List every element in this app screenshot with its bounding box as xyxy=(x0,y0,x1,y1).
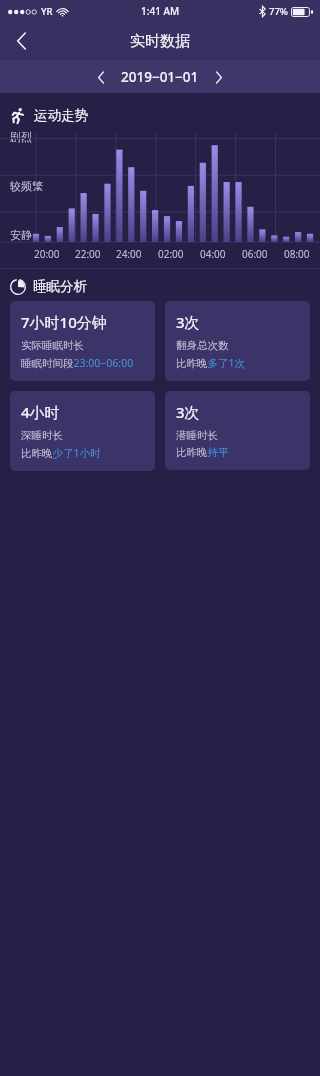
staticText: 睡眠分析 xyxy=(33,278,87,295)
staticText: 实时数据 xyxy=(130,32,190,51)
staticText: 24:00 xyxy=(116,247,142,261)
button[interactable]: Back xyxy=(0,22,42,60)
staticText: 4小时 xyxy=(21,402,60,422)
staticText: 安静 xyxy=(10,228,32,242)
staticText: 20:00 xyxy=(34,247,60,261)
staticText: 02:00 xyxy=(158,247,184,261)
staticText: 3次 xyxy=(176,312,200,332)
button[interactable]: Next day xyxy=(205,63,233,91)
staticText: 06:00 xyxy=(242,247,268,261)
staticText: 运动走势 xyxy=(34,107,88,124)
staticText: 08:00 xyxy=(284,247,310,261)
button[interactable]: 3次 xyxy=(165,301,310,381)
staticText: 剧烈 xyxy=(10,130,32,144)
staticText: 深睡时长 xyxy=(21,429,63,442)
staticText: 睡眠时间段23:00−06:00 xyxy=(21,356,134,370)
staticText: 翻身总次数 xyxy=(176,339,229,352)
staticText: 实际睡眠时长 xyxy=(21,339,84,352)
staticText: 3次 xyxy=(176,402,200,422)
staticText: 比昨晚持平 xyxy=(176,446,229,459)
button[interactable]: 7小时10分钟 xyxy=(10,301,155,381)
staticText: 比昨晚多了1次 xyxy=(176,356,246,370)
staticText: 潜睡时长 xyxy=(176,429,218,442)
button[interactable]: 3次 xyxy=(165,391,310,470)
staticText: 77% xyxy=(269,5,288,18)
staticText: 比昨晚少了1小时 xyxy=(21,446,101,460)
button[interactable]: Previous day xyxy=(87,63,115,91)
staticText: YR xyxy=(41,5,53,18)
staticText: 7小时10分钟 xyxy=(21,312,107,332)
staticText: 较频繁 xyxy=(10,179,43,193)
button[interactable]: 4小时 xyxy=(10,391,155,471)
staticText: 22:00 xyxy=(75,247,101,261)
staticText: 1:41 AM xyxy=(141,4,180,18)
staticText: 04:00 xyxy=(200,247,226,261)
staticText: 2019−01−01 xyxy=(121,68,199,86)
